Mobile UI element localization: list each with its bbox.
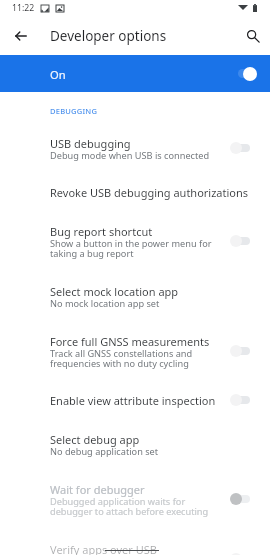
staticText: Force full GNSS measurements <box>50 334 210 349</box>
staticText: DEBUGGING <box>50 106 98 116</box>
staticText: Debug mode when USB is connected <box>50 151 210 161</box>
button[interactable]: Select mock location app <box>0 271 270 321</box>
button[interactable]: Force full GNSS measurements <box>0 321 270 381</box>
staticText: No debug application set <box>50 447 159 457</box>
button[interactable]: Search <box>240 23 265 48</box>
staticText: No mock location app set <box>50 299 160 309</box>
staticText: Debugged application waits for debugger … <box>50 497 209 517</box>
staticText: On <box>50 67 66 82</box>
staticText: Select mock location app <box>50 284 179 299</box>
staticText: 11:22 <box>12 2 35 14</box>
staticText: Select debug app <box>50 432 140 447</box>
staticText: Revoke USB debugging authorizations <box>50 185 249 200</box>
button[interactable]: Enable view attribute inspection <box>0 381 270 419</box>
staticText: Developer options <box>50 27 167 45</box>
button[interactable]: Wait for debugger <box>0 469 270 529</box>
staticText: Bug report shortcut <box>50 224 153 239</box>
staticText: Enable view attribute inspection <box>50 393 216 408</box>
button[interactable]: USB debugging <box>0 123 270 173</box>
staticText: Track all GNSS constellations and freque… <box>50 349 193 369</box>
button[interactable]: Select debug app <box>0 419 270 469</box>
button[interactable]: Navigate up <box>8 23 33 48</box>
button[interactable]: Verify apps over USB <box>0 529 270 555</box>
staticText: Wait for debugger <box>50 482 145 497</box>
button[interactable]: On <box>0 55 270 92</box>
button[interactable]: Revoke USB debugging authorizations <box>0 173 270 211</box>
staticText: Verify apps over USB <box>50 542 157 555</box>
staticText: USB debugging <box>50 136 131 151</box>
button[interactable]: Bug report shortcut <box>0 211 270 271</box>
staticText: Show a button in the power menu for taki… <box>50 239 212 259</box>
